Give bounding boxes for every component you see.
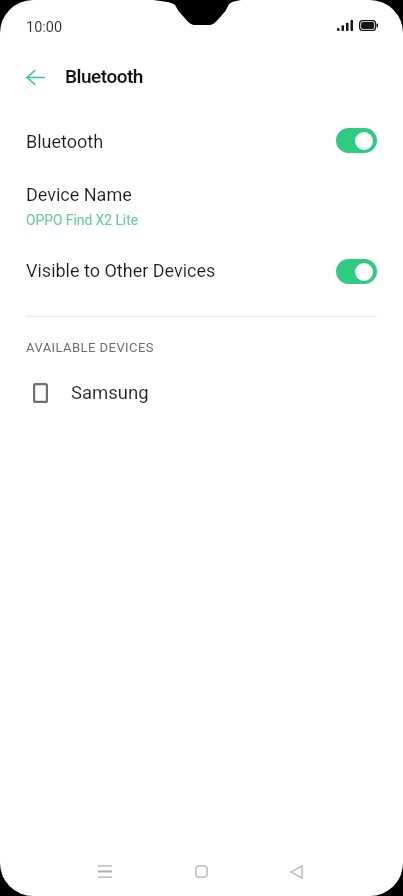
button[interactable]: Recent apps	[81, 847, 129, 895]
button[interactable]: Device Name	[0, 184, 403, 228]
button[interactable]: Back	[272, 848, 320, 896]
staticText: Bluetooth	[65, 65, 143, 87]
staticText: AVAILABLE DEVICES	[26, 340, 155, 355]
staticText: Bluetooth	[26, 131, 104, 152]
button[interactable]: Samsung	[0, 373, 403, 413]
staticText: OPPO Find X2 Lite	[26, 212, 139, 228]
staticText: Samsung	[71, 382, 149, 404]
button[interactable]: Visible to other devices on	[336, 259, 377, 284]
staticText: 10:00	[26, 19, 63, 36]
button[interactable]: Home	[177, 847, 225, 895]
button[interactable]: Visible to Other Devices	[0, 253, 403, 289]
staticText: Device Name	[26, 184, 132, 205]
button[interactable]: Bluetooth	[0, 122, 403, 158]
button[interactable]: Back	[18, 60, 52, 94]
staticText: Visible to Other Devices	[26, 260, 216, 281]
button[interactable]: Bluetooth on	[336, 128, 377, 153]
